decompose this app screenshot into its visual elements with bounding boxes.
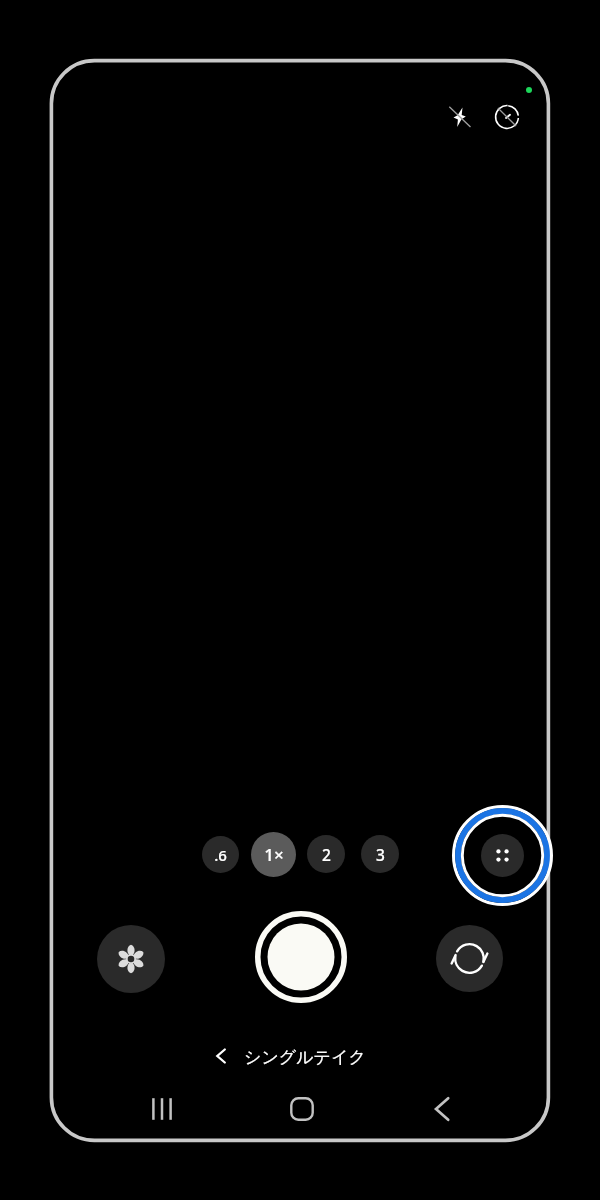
button[interactable]: Take photo	[255, 911, 347, 1003]
button[interactable]: シングルテイク	[205, 1040, 370, 1072]
staticText: 3	[376, 844, 385, 865]
staticText: シングルテイク	[244, 1047, 366, 1068]
staticText: 2	[322, 844, 331, 865]
button[interactable]: Filters	[97, 925, 165, 993]
button[interactable]: Home	[286, 1093, 318, 1125]
button[interactable]: 2	[307, 835, 345, 873]
button[interactable]: Recent apps	[146, 1093, 178, 1125]
button[interactable]: Switch camera	[436, 925, 503, 992]
button[interactable]: 1×	[251, 832, 296, 877]
button[interactable]: Back	[426, 1093, 458, 1125]
button[interactable]: More options	[452, 805, 553, 906]
button[interactable]: Flash off	[443, 100, 477, 134]
staticText: .6	[214, 845, 227, 865]
staticText: 1×	[264, 843, 284, 866]
button[interactable]: Timer off	[490, 100, 524, 134]
button[interactable]: .6	[202, 836, 239, 873]
button[interactable]: 3	[361, 835, 399, 873]
